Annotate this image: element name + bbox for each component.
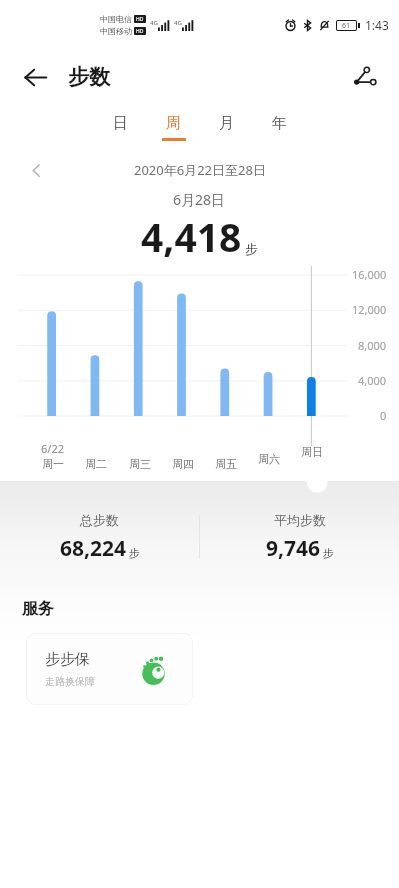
- button[interactable]: Previous week: [20, 154, 52, 186]
- staticText: 4G: [150, 19, 158, 27]
- staticText: 周四: [172, 457, 194, 471]
- staticText: 日: [113, 114, 128, 133]
- staticText: 走路换保障: [45, 675, 95, 688]
- staticText: 2020年6月22日至28日: [134, 161, 266, 179]
- staticText: 1:43: [365, 17, 389, 33]
- staticText: 中国移动: [100, 26, 132, 36]
- staticText: 0: [380, 408, 387, 423]
- staticText: 16,000: [352, 267, 387, 282]
- button[interactable]: 月: [200, 104, 253, 150]
- staticText: HD: [136, 28, 144, 35]
- staticText: 周五: [215, 457, 237, 471]
- staticText: 中国电信: [100, 14, 132, 24]
- staticText: 12,000: [352, 302, 387, 317]
- button[interactable]: Back: [14, 56, 56, 98]
- staticText: 步数: [68, 64, 110, 90]
- staticText: 周二: [85, 457, 107, 471]
- button[interactable]: 日: [94, 104, 147, 150]
- staticText: HD: [136, 16, 144, 23]
- staticText: 周三: [129, 457, 151, 471]
- staticText: 步步保: [45, 650, 90, 669]
- button[interactable]: 年: [253, 104, 306, 150]
- staticText: 周: [166, 114, 181, 133]
- staticText: 周六: [258, 452, 280, 466]
- staticText: 4,418: [141, 210, 242, 263]
- staticText: 4,000: [358, 373, 387, 388]
- staticText: 8,000: [358, 338, 387, 353]
- staticText: 步: [245, 241, 258, 257]
- staticText: 服务: [22, 599, 54, 619]
- button[interactable]: 周: [147, 104, 200, 150]
- staticText: 61: [342, 21, 351, 30]
- staticText: 68,224: [60, 534, 127, 563]
- staticText: 总步数: [80, 512, 119, 528]
- button[interactable]: 步步保: [26, 633, 193, 705]
- staticText: 周一: [42, 457, 64, 471]
- staticText: 6月28日: [173, 190, 226, 209]
- button[interactable]: Share: [343, 56, 385, 98]
- staticText: 月: [219, 114, 234, 133]
- staticText: 6/22: [41, 441, 64, 456]
- staticText: 9,746: [266, 534, 321, 563]
- staticText: 步: [323, 546, 334, 560]
- staticText: 周日: [301, 445, 323, 459]
- staticText: 年: [272, 114, 287, 133]
- staticText: 4G: [174, 19, 182, 27]
- staticText: 步: [129, 546, 140, 560]
- staticText: 平均步数: [274, 512, 326, 528]
